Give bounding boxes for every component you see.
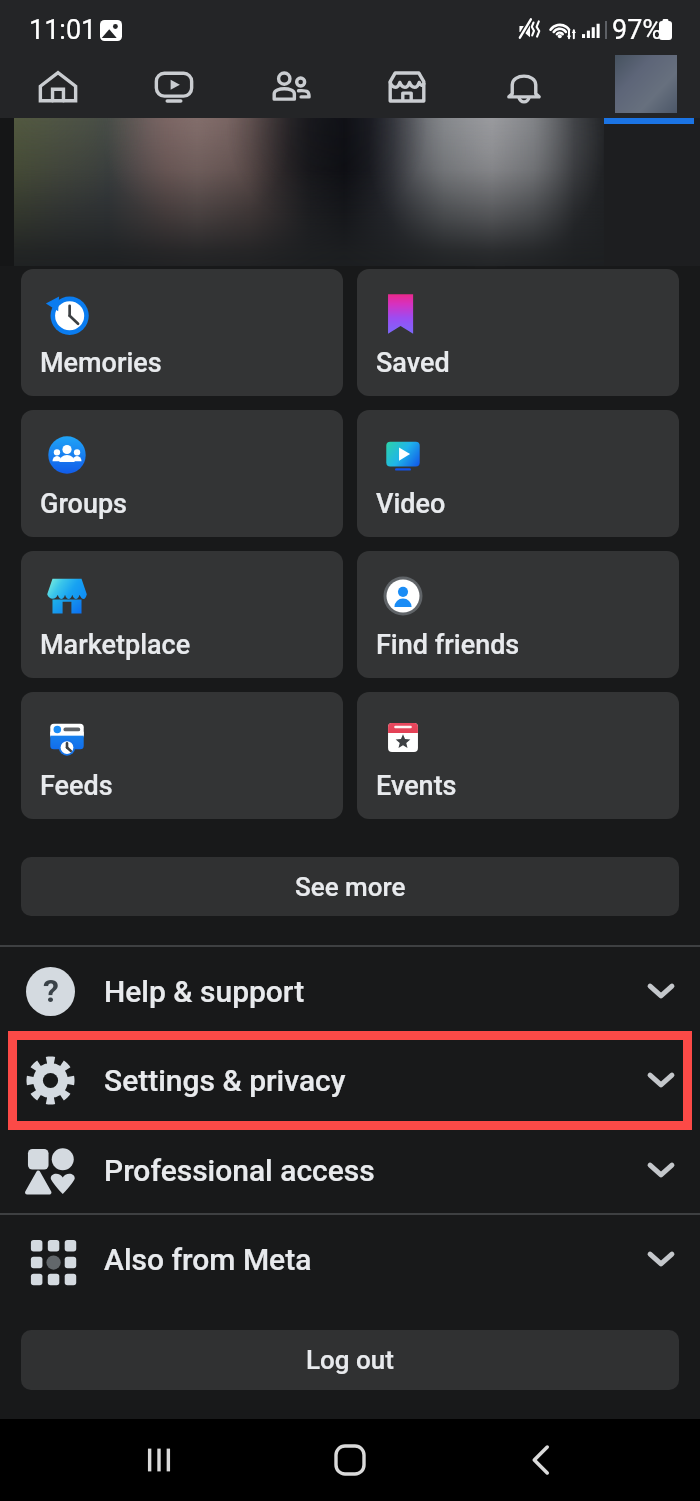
staticText: Also from Meta: [104, 1242, 312, 1277]
button[interactable]: Settings & privacy: [0, 1036, 700, 1124]
staticText: Feeds: [40, 770, 113, 802]
staticText: Marketplace: [40, 629, 191, 661]
button[interactable]: Saved: [357, 269, 679, 396]
staticText: Saved: [376, 347, 450, 379]
staticText: 11:01: [29, 14, 97, 46]
button[interactable]: Recents: [127, 1428, 191, 1492]
button[interactable]: Back: [509, 1428, 573, 1492]
button[interactable]: Events: [357, 692, 679, 819]
button[interactable]: Video: [124, 55, 224, 118]
button[interactable]: Friends: [241, 55, 341, 118]
button[interactable]: Notifications: [474, 55, 574, 118]
button[interactable]: ?: [0, 947, 700, 1035]
button[interactable]: Marketplace: [357, 55, 457, 118]
button[interactable]: See more: [21, 857, 679, 916]
staticText: 97%: [612, 14, 663, 46]
button[interactable]: Find friends: [357, 551, 679, 678]
button[interactable]: Groups: [21, 410, 343, 537]
staticText: Groups: [40, 488, 128, 520]
button[interactable]: Marketplace: [21, 551, 343, 678]
staticText: See more: [295, 872, 406, 902]
button[interactable]: Also from Meta: [0, 1215, 700, 1303]
staticText: Video: [376, 488, 446, 520]
button[interactable]: Log out: [21, 1330, 679, 1390]
button[interactable]: Profile: [604, 55, 694, 118]
button[interactable]: Home: [318, 1428, 382, 1492]
button[interactable]: Video: [357, 410, 679, 537]
button[interactable]: Home: [8, 55, 108, 118]
staticText: Log out: [306, 1345, 394, 1375]
staticText: ?: [43, 972, 59, 1010]
button[interactable]: Feeds: [21, 692, 343, 819]
staticText: Memories: [40, 347, 162, 379]
staticText: Help & support: [104, 974, 305, 1009]
staticText: Find friends: [376, 629, 520, 661]
staticText: Events: [376, 770, 457, 802]
button[interactable]: Professional access: [0, 1126, 700, 1214]
button[interactable]: Memories: [21, 269, 343, 396]
staticText: Settings & privacy: [104, 1063, 346, 1098]
staticText: Professional access: [104, 1153, 375, 1188]
